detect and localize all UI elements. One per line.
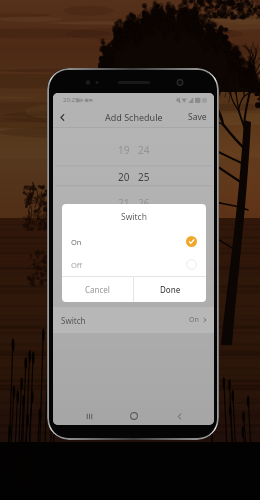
button[interactable]: Done [134, 277, 206, 302]
button[interactable]: On [62, 230, 206, 253]
staticText: Switch [121, 211, 147, 223]
button[interactable]: Recents [82, 409, 96, 423]
staticText: Save [188, 111, 207, 123]
button[interactable]: Off [62, 253, 206, 276]
button[interactable]: Switch [53, 307, 214, 333]
button[interactable]: Home [127, 409, 141, 423]
button[interactable]: Save [181, 108, 214, 126]
button[interactable]: Back [172, 409, 186, 423]
staticText: Switch [61, 315, 86, 326]
staticText: 25 [138, 170, 150, 182]
staticText: Done [160, 284, 181, 295]
staticText: 26 [138, 196, 150, 208]
staticText: 19 [118, 143, 130, 155]
button[interactable]: Cancel [62, 277, 133, 302]
staticText: 20:25 [63, 96, 79, 104]
staticText: 21 [118, 196, 130, 208]
staticText: 20 [118, 170, 130, 182]
staticText: On [189, 315, 199, 325]
staticText: Off [71, 260, 83, 270]
staticText: Cancel [85, 284, 110, 295]
staticText: On [71, 237, 82, 247]
staticText: Add Schedule [105, 111, 163, 123]
button[interactable]: Back [53, 108, 71, 126]
staticText: 24 [138, 143, 150, 155]
